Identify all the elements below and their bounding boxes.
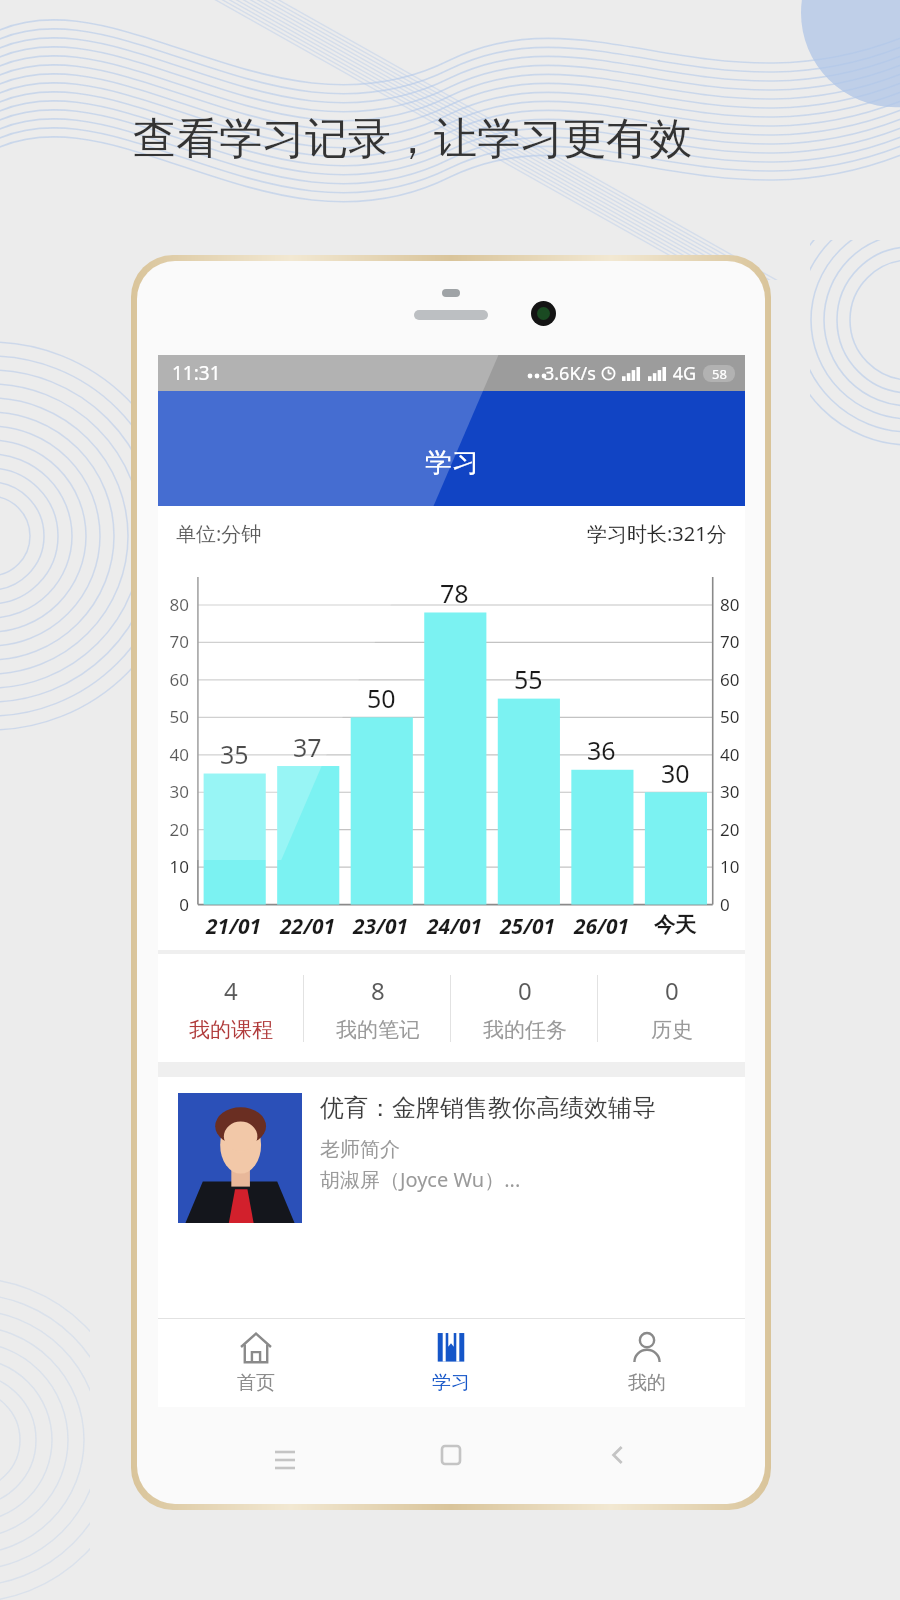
staticText: 我的笔记 [336,1017,420,1043]
staticText: 58 [712,365,727,382]
staticText: 30 [169,780,189,803]
staticText: 50 [720,705,740,728]
staticText: 0 [720,893,730,916]
staticText: 0 [665,974,679,1007]
staticText: 60 [169,668,189,691]
staticText: 历史 [651,1017,693,1043]
button[interactable]: 0 [451,954,598,1062]
staticText: 11:31 [172,360,221,386]
staticText: 10 [169,855,189,878]
staticText: 40 [720,743,740,766]
staticText: 胡淑屏（Joyce Wu）... [320,1166,521,1193]
button[interactable]: 首页 [158,1319,353,1407]
staticText: 学习 [432,1371,470,1395]
staticText: 80 [720,593,740,616]
staticText: 我的任务 [483,1017,567,1043]
staticText: 我的课程 [189,1017,273,1043]
button[interactable]: 4 [158,954,304,1062]
staticText: 50 [169,705,189,728]
staticText: 40 [169,743,189,766]
staticText: 23/01 [353,912,409,941]
staticText: 0 [518,974,532,1007]
staticText: 30 [720,780,740,803]
button[interactable]: 8 [304,954,451,1062]
staticText: 50 [367,681,396,715]
staticText: 37 [293,730,322,764]
staticText: 8 [371,974,385,1007]
staticText: 0 [179,893,189,916]
staticText: 10 [720,855,740,878]
button[interactable]: 0 [598,954,745,1062]
staticText: 21/01 [206,912,262,941]
staticText: 单位:分钟 [176,520,262,547]
staticText: 我的 [628,1371,666,1395]
staticText: 学习 [425,446,479,480]
staticText: 24/01 [427,912,483,941]
staticText: 4G [668,361,697,386]
staticText: 36 [587,733,616,767]
staticText: 35 [220,737,249,771]
staticText: 3.6K/s [544,361,596,386]
staticText: 55 [514,662,543,696]
staticText: 70 [720,630,740,653]
staticText: 22/01 [280,912,336,941]
staticText: 80 [169,593,189,616]
button[interactable]: 优育：金牌销售教你高绩效辅导 [158,1077,745,1223]
staticText: 首页 [237,1371,275,1395]
staticText: 30 [661,756,690,790]
button[interactable]: 学习 [353,1319,549,1407]
staticText: 4 [224,974,238,1007]
staticText: 60 [720,668,740,691]
button[interactable]: 我的 [549,1319,745,1407]
staticText: 70 [169,630,189,653]
staticText: 25/01 [500,912,556,941]
staticText: 20 [169,818,189,841]
staticText: 今天 [654,912,696,938]
staticText: 26/01 [574,912,630,941]
staticText: 查看学习记录，让学习更有效 [133,112,692,166]
staticText: 老师简介 [320,1137,400,1162]
staticText: 学习时长:321分 [587,520,727,547]
staticText: 78 [440,576,469,610]
staticText: 20 [720,818,740,841]
staticText: 优育：金牌销售教你高绩效辅导 [320,1093,656,1123]
